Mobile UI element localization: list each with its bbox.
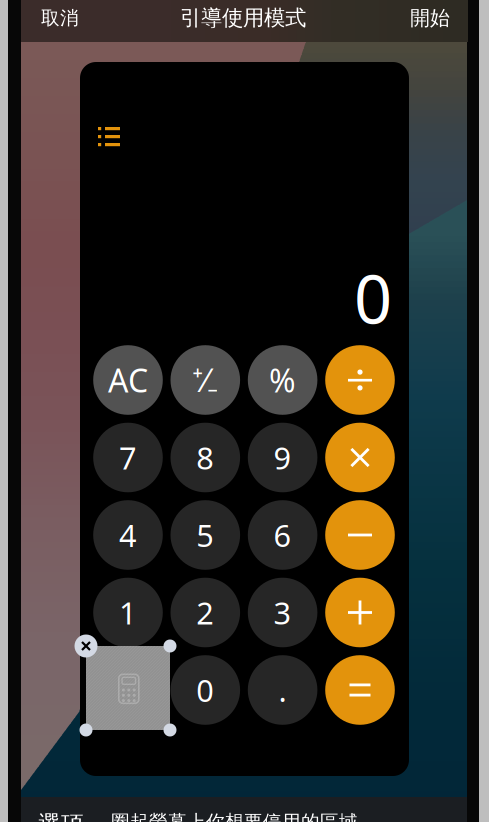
staticText: 8 bbox=[196, 437, 214, 478]
button[interactable]: ⁺⁄₋ bbox=[170, 345, 240, 415]
staticText: 9 bbox=[274, 437, 292, 478]
button[interactable]: 2 bbox=[170, 578, 240, 647]
staticText: 圈起螢幕上你想要停用的區域。 bbox=[111, 810, 377, 822]
staticText: 取消 bbox=[41, 6, 79, 29]
button[interactable]: Equals bbox=[325, 655, 395, 725]
button[interactable]: 取消 bbox=[31, 0, 89, 39]
staticText: 4 bbox=[119, 515, 137, 555]
button[interactable]: 4 bbox=[93, 500, 163, 570]
button[interactable]: 9 bbox=[248, 423, 317, 492]
button[interactable]: Divide bbox=[325, 345, 395, 415]
staticText: 3 bbox=[274, 592, 292, 633]
button[interactable]: Add bbox=[325, 578, 395, 647]
button[interactable]: 6 bbox=[248, 500, 317, 570]
staticText: 1 bbox=[119, 592, 137, 633]
button[interactable]: 5 bbox=[170, 500, 240, 570]
button[interactable]: 8 bbox=[170, 423, 240, 492]
staticText: ⁺⁄₋ bbox=[192, 359, 218, 401]
button[interactable]: 1 bbox=[93, 578, 163, 647]
button[interactable]: AC bbox=[93, 345, 163, 415]
staticText: 7 bbox=[119, 437, 137, 478]
staticText: AC bbox=[108, 359, 148, 401]
button[interactable]: Subtract bbox=[325, 500, 395, 570]
button[interactable]: 開始 bbox=[401, 0, 459, 39]
staticText: 5 bbox=[196, 515, 214, 555]
staticText: 0 bbox=[354, 254, 392, 342]
button[interactable]: 7 bbox=[93, 423, 163, 492]
staticText: 引導使用模式 bbox=[180, 5, 306, 31]
staticText: . bbox=[279, 670, 287, 710]
button[interactable]: . bbox=[248, 655, 317, 725]
button[interactable]: 選項 bbox=[38, 812, 98, 822]
staticText: 開始 bbox=[410, 6, 450, 30]
staticText: 0 bbox=[196, 670, 214, 710]
button[interactable]: 0 bbox=[170, 655, 240, 725]
button[interactable]: % bbox=[248, 345, 317, 415]
button[interactable]: Multiply bbox=[325, 423, 395, 492]
button[interactable]: Remove region bbox=[74, 634, 97, 657]
staticText: 選項 bbox=[38, 810, 84, 822]
staticText: 6 bbox=[274, 515, 292, 555]
button[interactable]: 3 bbox=[248, 578, 317, 647]
staticText: 2 bbox=[196, 592, 214, 633]
staticText: % bbox=[269, 359, 296, 401]
